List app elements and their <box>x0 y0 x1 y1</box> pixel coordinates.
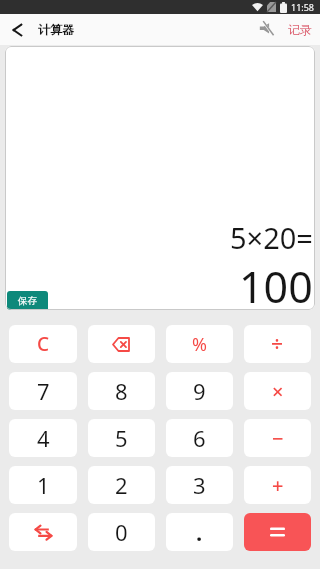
button[interactable]: ÷ <box>244 325 311 363</box>
button[interactable]: 4 <box>9 419 77 457</box>
staticText: 保存 <box>18 295 37 307</box>
button[interactable] <box>0 14 34 45</box>
staticText: 0 <box>115 517 128 547</box>
staticText: × <box>272 378 284 405</box>
button[interactable]: 7 <box>9 372 77 410</box>
staticText: 计算器 <box>38 22 74 37</box>
staticText: 1 <box>37 470 50 500</box>
button[interactable]: 2 <box>88 466 155 504</box>
staticText: C <box>37 331 50 357</box>
button[interactable]: % <box>166 325 233 363</box>
staticText: . <box>196 517 203 547</box>
button[interactable]: 0 <box>88 513 155 551</box>
button[interactable]: 1 <box>9 466 77 504</box>
button[interactable]: C <box>9 325 77 363</box>
staticText: 100 <box>239 257 313 310</box>
staticText: 9 <box>193 376 206 406</box>
button[interactable]: 8 <box>88 372 155 410</box>
staticText: 3 <box>193 470 206 500</box>
staticText: − <box>272 425 284 452</box>
staticText: % <box>192 332 207 357</box>
button[interactable]: 9 <box>166 372 233 410</box>
button[interactable]: . <box>166 513 233 551</box>
button[interactable]: − <box>244 419 311 457</box>
button[interactable] <box>9 513 77 551</box>
button[interactable]: 记录 <box>280 14 320 45</box>
staticText: 5×20= <box>230 218 313 257</box>
button[interactable]: + <box>244 466 311 504</box>
staticText: ÷ <box>271 330 284 359</box>
button[interactable] <box>252 14 280 45</box>
staticText: 4 <box>37 423 50 453</box>
staticText: 记录 <box>288 22 312 37</box>
button[interactable]: 6 <box>166 419 233 457</box>
button[interactable] <box>244 513 311 551</box>
button[interactable]: 3 <box>166 466 233 504</box>
button[interactable]: 保存 <box>7 291 48 310</box>
staticText: 5 <box>115 423 128 453</box>
button[interactable]: 5 <box>88 419 155 457</box>
staticText: 11:58 <box>291 1 315 13</box>
staticText: 2 <box>115 470 128 500</box>
staticText: 8 <box>115 376 128 406</box>
button[interactable] <box>88 325 155 363</box>
button[interactable]: × <box>244 372 311 410</box>
staticText: 7 <box>37 376 50 406</box>
staticText: 6 <box>193 423 206 453</box>
staticText: + <box>272 472 284 499</box>
